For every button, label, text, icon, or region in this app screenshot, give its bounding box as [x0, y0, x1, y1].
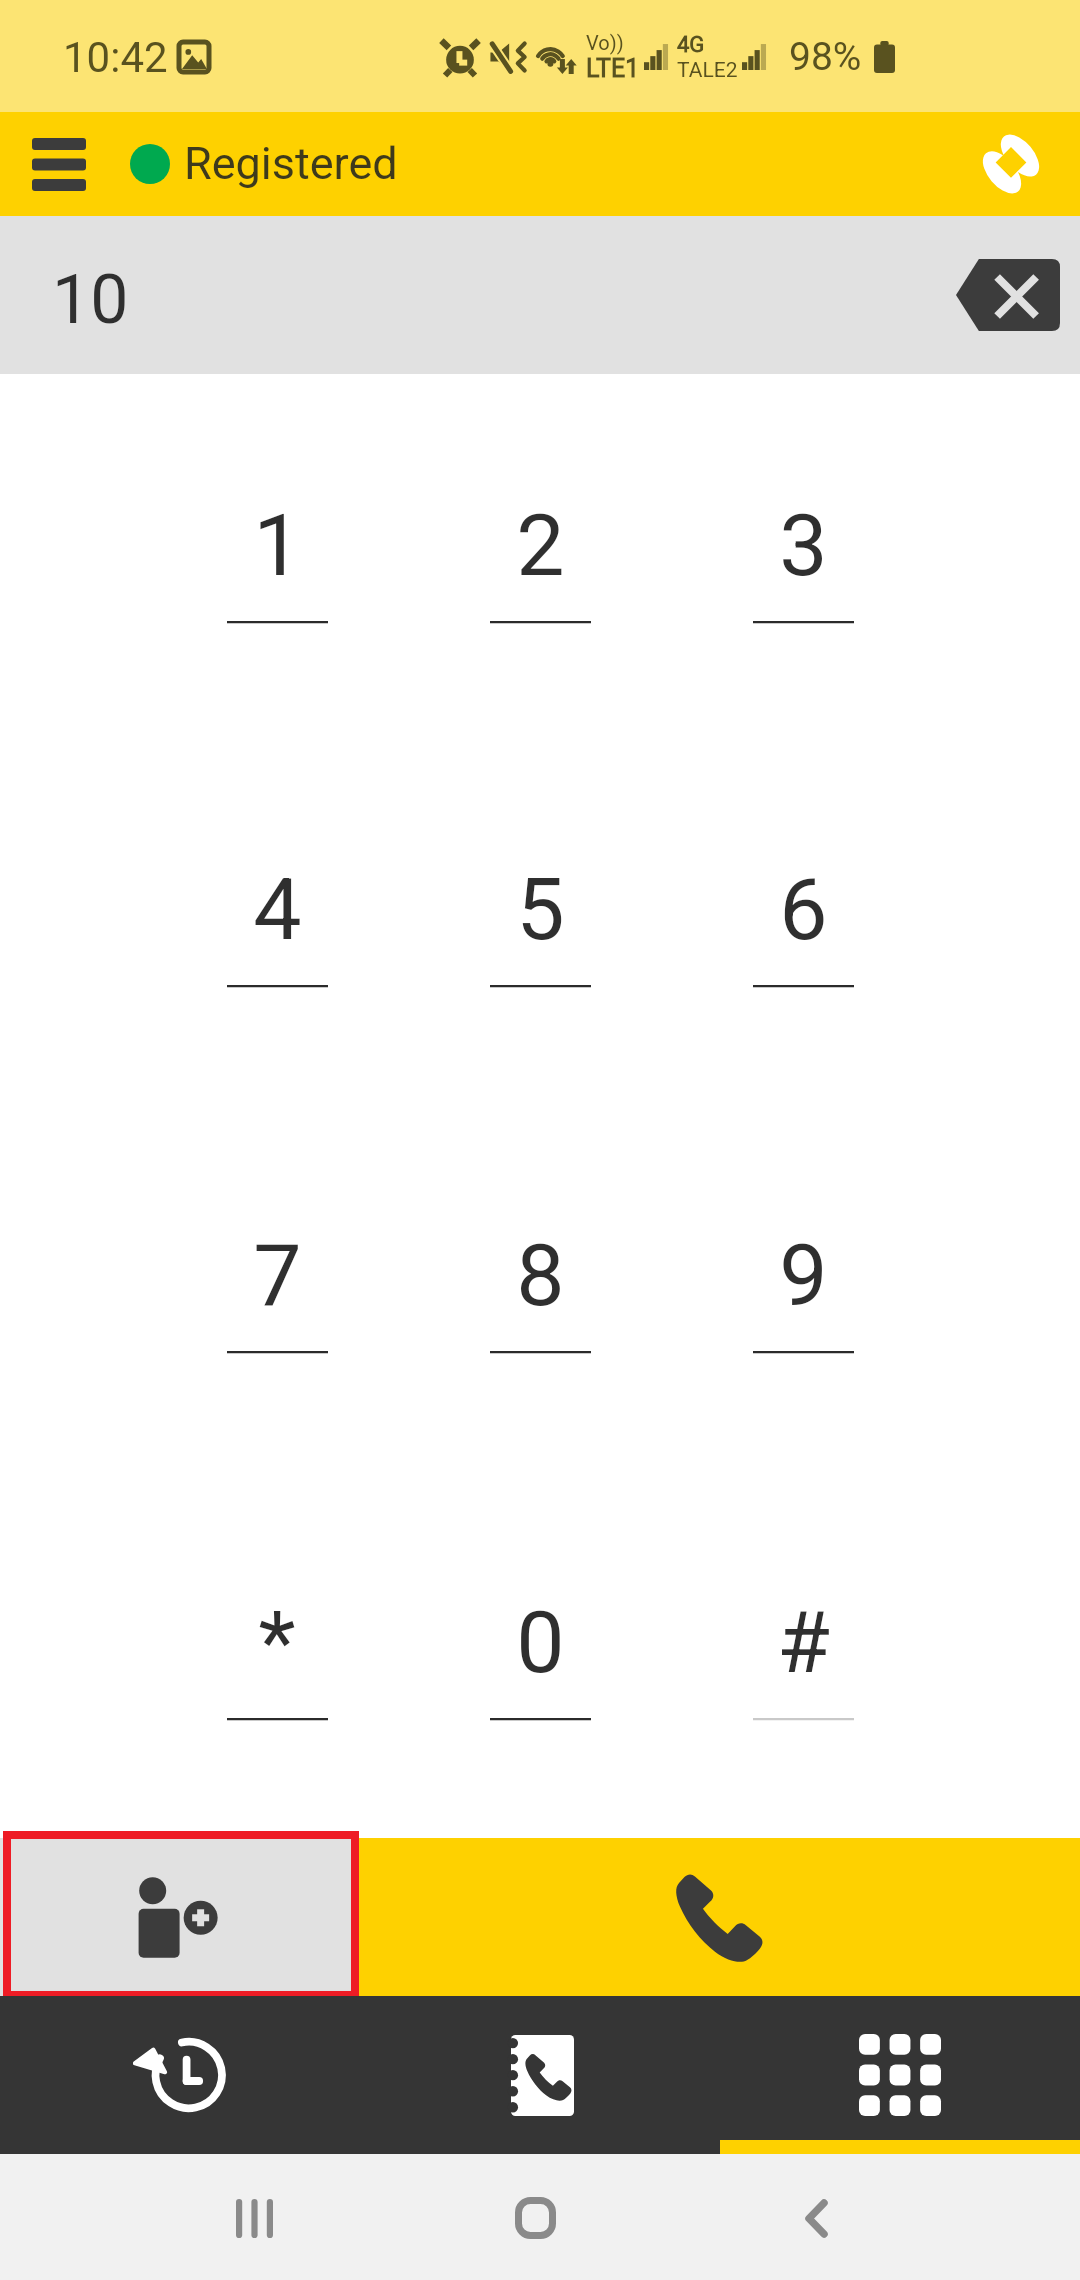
button[interactable]: 9: [672, 1191, 934, 1491]
staticText: #: [777, 1592, 830, 1693]
staticText: 2: [516, 495, 565, 596]
button[interactable]: Call: [359, 1838, 1080, 1996]
staticText: 0: [516, 1592, 565, 1693]
staticText: 1: [253, 495, 302, 596]
staticText: TALE2: [677, 58, 738, 83]
button[interactable]: Keypad: [720, 1996, 1080, 2154]
button[interactable]: Backspace: [946, 245, 1070, 345]
button[interactable]: 7: [146, 1191, 408, 1491]
button[interactable]: Home: [475, 2154, 595, 2280]
staticText: 8: [516, 1225, 565, 1326]
staticText: Vo)): [586, 31, 624, 54]
staticText: LTE1: [586, 54, 640, 83]
button[interactable]: 5: [409, 825, 671, 1125]
button[interactable]: 2: [409, 461, 671, 761]
button[interactable]: Menu: [0, 112, 104, 216]
button[interactable]: 0: [409, 1558, 671, 1858]
button[interactable]: 1: [146, 461, 408, 761]
staticText: 6: [779, 859, 828, 960]
staticText: *: [258, 1592, 296, 1693]
button[interactable]: *: [146, 1558, 408, 1858]
button[interactable]: Recents: [0, 1996, 360, 2154]
button[interactable]: Recent apps: [194, 2154, 314, 2280]
button[interactable]: 6: [672, 825, 934, 1125]
staticText: 9: [779, 1225, 828, 1326]
button[interactable]: 4: [146, 825, 408, 1125]
button[interactable]: Back: [756, 2154, 876, 2280]
button[interactable]: #: [672, 1558, 934, 1858]
staticText: 3: [779, 495, 828, 596]
staticText: 10:42: [63, 33, 168, 82]
button[interactable]: 8: [409, 1191, 671, 1491]
staticText: 98%: [789, 34, 862, 80]
staticText: 7: [253, 1225, 302, 1326]
button[interactable]: Contacts: [360, 1996, 720, 2154]
staticText: 4G: [677, 32, 705, 58]
button[interactable]: Account: [976, 112, 1080, 216]
staticText: 4: [253, 859, 302, 960]
staticText: Registered: [184, 137, 398, 190]
staticText: 5: [516, 859, 565, 960]
button[interactable]: Add contact: [0, 1838, 359, 1996]
staticText: 10: [52, 260, 129, 340]
button[interactable]: 3: [672, 461, 934, 761]
